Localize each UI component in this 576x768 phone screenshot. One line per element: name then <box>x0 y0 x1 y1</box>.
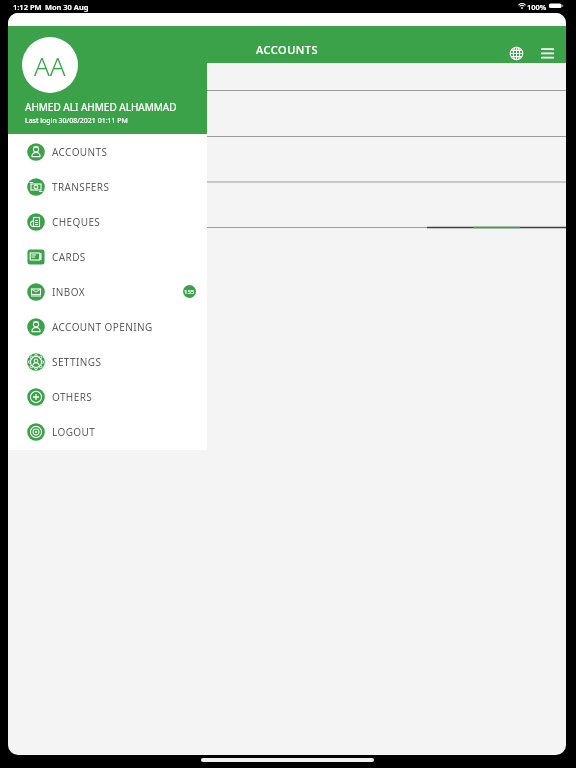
button[interactable] <box>540 46 555 61</box>
button[interactable]: ACCOUNT OPENING <box>8 309 207 344</box>
staticText: Last login 30/08/2021 01:11 PM <box>25 116 128 126</box>
staticText: LOGOUT <box>52 425 96 439</box>
staticText: 1:12 PM <box>13 2 42 12</box>
staticText: OTHERS <box>52 390 93 404</box>
staticText: SETTINGS <box>52 355 102 369</box>
staticText: INBOX <box>52 285 85 299</box>
button[interactable]: CHEQUES <box>8 204 207 239</box>
staticText: CARDS <box>52 250 86 264</box>
staticText: CHEQUES <box>52 215 101 229</box>
staticText: AA <box>34 48 66 83</box>
staticText: Mon 30 Aug <box>45 2 89 12</box>
button[interactable]: TRANSFERS <box>8 169 207 204</box>
staticText: 155 <box>184 288 195 296</box>
button[interactable]: LOGOUT <box>8 414 207 449</box>
staticText: ACCOUNTS <box>52 145 108 159</box>
staticText: ACCOUNTS <box>256 42 319 57</box>
button[interactable]: ACCOUNTS <box>8 134 207 169</box>
button[interactable]: INBOX <box>8 274 207 309</box>
button[interactable]: CARDS <box>8 239 207 274</box>
staticText: ACCOUNT OPENING <box>52 320 153 334</box>
button[interactable]: OTHERS <box>8 379 207 414</box>
staticText: AHMED ALI AHMED ALHAMMAD <box>25 100 177 114</box>
button[interactable] <box>509 46 524 61</box>
staticText: TRANSFERS <box>52 180 110 194</box>
button[interactable]: SETTINGS <box>8 344 207 379</box>
staticText: 100% <box>527 2 547 12</box>
